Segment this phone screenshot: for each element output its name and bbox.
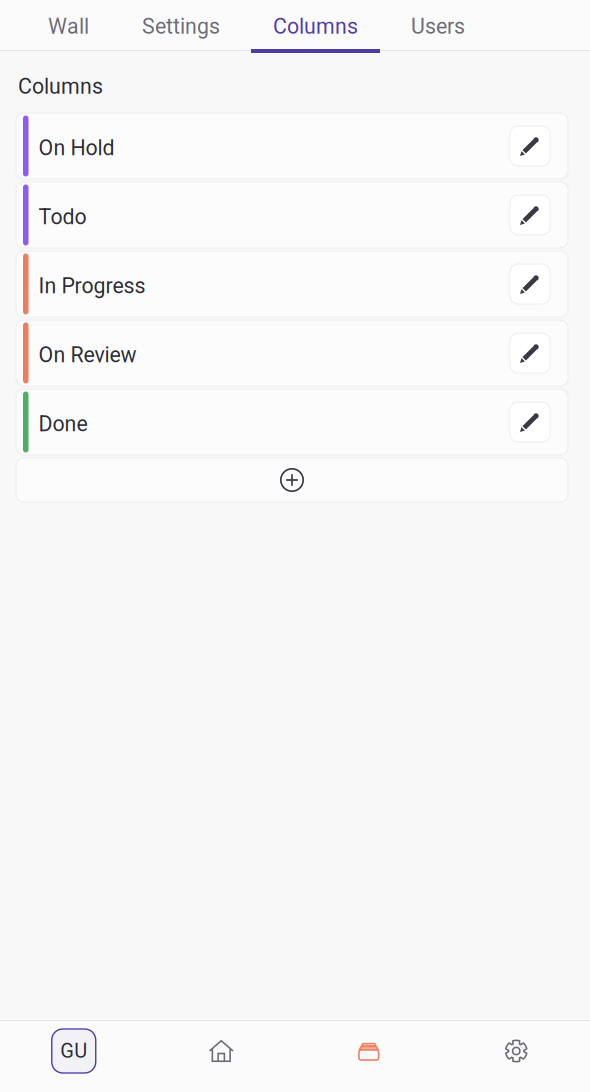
button[interactable]: Add column — [16, 458, 568, 502]
staticText: Columns — [273, 14, 358, 39]
button[interactable]: Edit In Progress — [510, 264, 550, 304]
button[interactable]: Settings — [120, 0, 242, 53]
staticText: GU — [60, 1039, 87, 1063]
staticText: On Hold — [38, 135, 114, 160]
button[interactable]: Home — [147, 1020, 295, 1082]
staticText: In Progress — [38, 273, 145, 298]
staticText: Users — [411, 14, 465, 39]
staticText: Settings — [142, 14, 220, 39]
button[interactable]: Boards — [295, 1020, 442, 1082]
button[interactable]: Settings — [442, 1020, 590, 1082]
button[interactable]: Edit Done — [510, 402, 550, 442]
button[interactable]: Wall — [26, 0, 111, 53]
button[interactable]: Columns — [251, 0, 380, 53]
staticText: Todo — [38, 204, 86, 229]
staticText: Wall — [48, 14, 89, 39]
button[interactable]: Edit On Hold — [510, 126, 550, 166]
staticText: Columns — [18, 74, 103, 99]
button[interactable]: Users — [389, 0, 487, 53]
button[interactable]: Edit Todo — [510, 195, 550, 235]
staticText: Done — [38, 411, 87, 436]
staticText: On Review — [38, 342, 136, 367]
button[interactable]: Profile — [0, 1020, 147, 1082]
button[interactable]: Edit On Review — [510, 333, 550, 373]
